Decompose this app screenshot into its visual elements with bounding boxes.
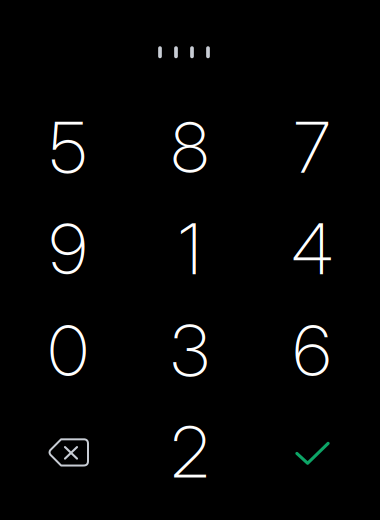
staticText: 2 [171, 410, 209, 494]
staticText: 7 [294, 105, 330, 190]
staticText: 9 [49, 207, 87, 291]
staticText: 8 [171, 105, 209, 190]
button[interactable]: 5 [7, 94, 129, 196]
button[interactable]: 3 [129, 298, 251, 399]
staticText: 0 [48, 308, 88, 393]
staticText: 4 [291, 207, 332, 291]
button[interactable]: 9 [7, 196, 129, 298]
button[interactable]: Confirm [251, 399, 373, 501]
button[interactable]: 0 [7, 298, 129, 399]
button[interactable]: Delete [7, 399, 129, 501]
staticText: 5 [49, 105, 86, 190]
staticText: 3 [170, 308, 209, 393]
button[interactable]: 8 [129, 94, 251, 196]
button[interactable]: 2 [129, 399, 251, 501]
staticText: 1 [178, 207, 201, 291]
staticText: 6 [293, 308, 331, 393]
button[interactable]: 1 [129, 196, 251, 298]
button[interactable]: 7 [251, 94, 373, 196]
button[interactable]: 4 [251, 196, 373, 298]
button[interactable]: 6 [251, 298, 373, 399]
